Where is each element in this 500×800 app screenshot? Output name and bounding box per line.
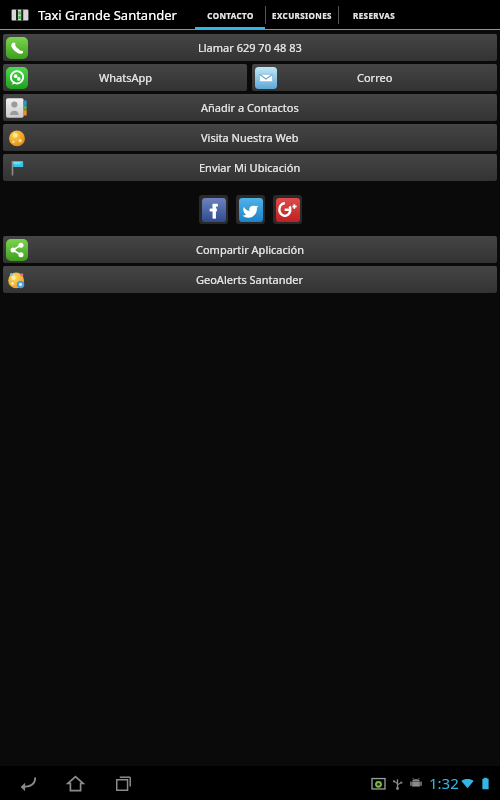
staticText: Llamar 629 70 48 83 [198,40,302,55]
button[interactable]: WhatsApp [3,64,247,91]
staticText: 1:32 [429,773,459,793]
button[interactable]: GeoAlerts Santander [3,266,497,293]
button[interactable]: Enviar Mi Ubicación [3,154,497,181]
button[interactable]: Home [58,766,92,800]
button[interactable]: Facebook [199,195,228,224]
staticText: Taxi Grande Santander [38,6,177,24]
staticText: WhatsApp [99,70,152,85]
staticText: Compartir Aplicación [196,242,305,257]
button[interactable]: Visita Nuestra Web [3,124,497,151]
button[interactable]: Llamar 629 70 48 83 [3,34,497,61]
button[interactable]: Twitter [236,195,265,224]
staticText: RESERVAS [353,10,395,21]
button[interactable]: Google Plus [273,195,302,224]
button[interactable]: EXCURSIONES [266,0,338,30]
button[interactable]: Recent apps [106,766,140,800]
staticText: GeoAlerts Santander [196,272,304,287]
staticText: Visita Nuestra Web [201,130,299,145]
staticText: EXCURSIONES [272,10,332,21]
button[interactable]: Añadir a Contactos [3,94,497,121]
staticText: Correo [357,70,393,85]
button[interactable]: Compartir Aplicación [3,236,497,263]
staticText: CONTACTO [207,10,254,21]
staticText: Enviar Mi Ubicación [199,160,301,175]
button[interactable]: Back [10,766,44,800]
button[interactable]: Correo [252,64,497,91]
button[interactable]: CONTACTO [195,0,265,30]
button[interactable]: RESERVAS [339,0,409,30]
staticText: Añadir a Contactos [201,100,299,115]
